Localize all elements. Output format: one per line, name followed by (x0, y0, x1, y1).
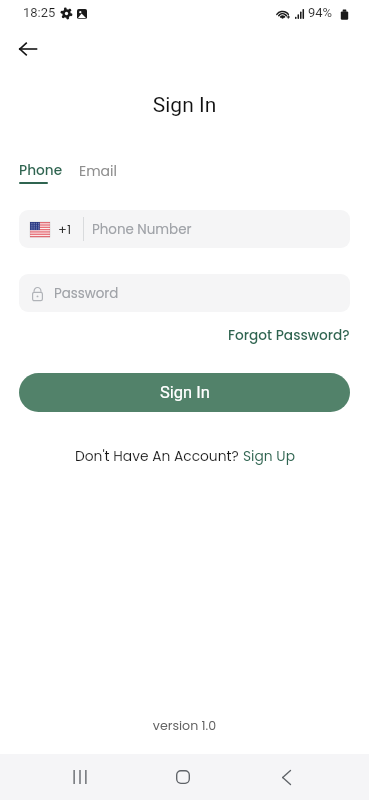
staticText: +1 (58, 220, 72, 238)
button[interactable]: Sign In (19, 373, 350, 412)
staticText: Forgot Password? (228, 326, 350, 345)
staticText: Sign Up (243, 447, 295, 466)
button[interactable]: Email (79, 161, 117, 181)
staticText: Sign In (0, 93, 369, 118)
button[interactable]: Forgot Password? (228, 326, 350, 345)
button[interactable]: Password (19, 274, 350, 312)
button[interactable]: Back (10, 31, 46, 67)
button[interactable]: Recent apps (56, 754, 104, 800)
staticText: Email (79, 161, 117, 181)
staticText: 94% (308, 5, 333, 20)
button[interactable]: Back (262, 754, 310, 800)
button[interactable]: Home (159, 754, 207, 800)
button[interactable]: Phone (19, 161, 63, 180)
staticText: Password (54, 284, 119, 303)
staticText: Sign In (160, 383, 210, 402)
staticText: Don't Have An Account? (75, 447, 243, 466)
button[interactable]: Sign Up (243, 447, 295, 466)
staticText: version 1.0 (0, 717, 369, 735)
button[interactable]: +1 (19, 210, 350, 248)
staticText: 18:25 (23, 5, 56, 20)
staticText: Phone Number (92, 220, 192, 239)
staticText: Phone (19, 161, 63, 180)
